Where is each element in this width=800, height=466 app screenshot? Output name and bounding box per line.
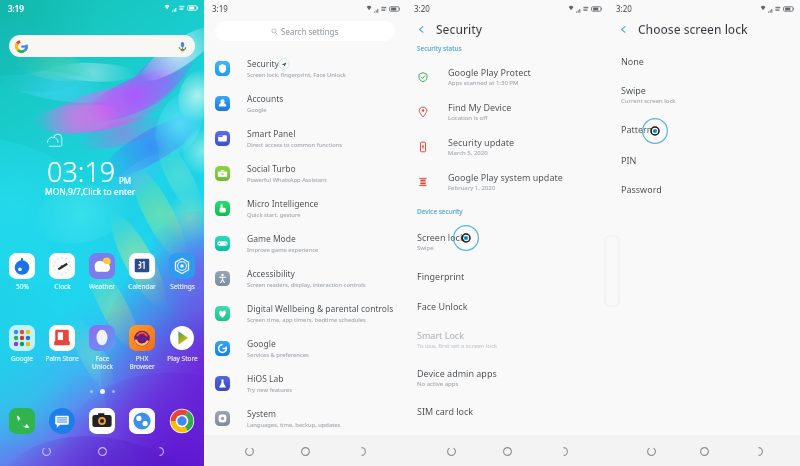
staticText: Device security (417, 207, 463, 216)
staticText: Pattern (621, 123, 653, 135)
staticText: 3:20 (616, 3, 632, 14)
button[interactable]: PIN (608, 145, 800, 174)
staticText: 3:19 (8, 3, 24, 14)
button[interactable]: Face Unlock (82, 325, 122, 371)
button[interactable]: Palm Store (42, 325, 82, 363)
button[interactable]: Back (552, 440, 574, 462)
button[interactable]: Swipe (608, 76, 800, 113)
staticText: Weather (89, 282, 115, 291)
button[interactable]: Messages (49, 408, 75, 434)
button[interactable]: Face Unlock (406, 291, 608, 321)
button[interactable]: Device admin apps (406, 358, 608, 396)
button[interactable]: Smart Lock (406, 321, 608, 358)
button[interactable]: Recents (35, 440, 57, 462)
button[interactable]: Screen lock (406, 222, 608, 261)
button[interactable]: Home (496, 440, 518, 462)
button[interactable]: Digital Wellbeing & parental controls (204, 296, 406, 331)
button[interactable]: Back (415, 23, 428, 36)
button[interactable]: Recents (440, 440, 462, 462)
button[interactable]: Back (617, 23, 630, 36)
staticText: Device admin apps (417, 367, 497, 379)
staticText: Play Store (167, 354, 198, 363)
button[interactable]: Back (148, 440, 170, 462)
staticText: Choose screen lock (638, 21, 748, 37)
staticText: MON,9/7,Click to enter (45, 186, 136, 198)
button[interactable]: HiOS Lab (204, 366, 406, 401)
staticText: Google (247, 338, 276, 350)
button[interactable]: Music (129, 408, 155, 434)
staticText: Accessibility (247, 268, 295, 280)
staticText: Quick start, gesture (247, 211, 301, 219)
button[interactable]: Game Mode (204, 226, 406, 261)
button[interactable]: Smart Panel (204, 121, 406, 156)
button[interactable]: Home (294, 440, 316, 462)
staticText: Google (247, 106, 267, 114)
staticText: Swipe (417, 244, 434, 252)
staticText: Face Unlock (417, 300, 468, 312)
button[interactable]: Security (204, 51, 406, 86)
staticText: Clock (54, 282, 71, 291)
staticText: March 5, 2020 (448, 149, 488, 157)
button[interactable]: None (608, 46, 800, 76)
staticText: System (247, 408, 276, 420)
button[interactable]: Weather (82, 253, 122, 291)
button[interactable]: Find My Device (406, 94, 608, 129)
staticText: PM (119, 175, 132, 186)
staticText: Social Turbo (247, 163, 296, 175)
staticText: Google Play system update (448, 171, 563, 183)
button[interactable]: Micro Intelligence (204, 191, 406, 226)
button[interactable]: PHX Browser (122, 325, 162, 371)
button[interactable]: Security update (406, 129, 608, 164)
staticText: Game Mode (247, 233, 296, 245)
button[interactable]: Google Play system update (406, 164, 608, 199)
button[interactable]: 50% (2, 253, 42, 291)
staticText: HiOS Lab (247, 373, 284, 385)
staticText: Direct access to common functions (247, 141, 343, 149)
staticText: February 1, 2020 (448, 184, 496, 192)
button[interactable]: Recents (238, 440, 260, 462)
staticText: 03:19 (47, 153, 116, 190)
staticText: Find My Device (448, 101, 512, 113)
button[interactable]: System (204, 401, 406, 436)
staticText: Search settings (281, 26, 339, 37)
button[interactable]: Recents (640, 440, 662, 462)
staticText: 3:20 (414, 3, 430, 14)
button[interactable]: Search settings (215, 21, 395, 41)
staticText: Current screen lock (621, 97, 676, 105)
button[interactable]: Camera (89, 408, 115, 434)
button[interactable]: Chrome (169, 408, 195, 434)
button[interactable]: Social Turbo (204, 156, 406, 191)
button[interactable]: SIM card lock (406, 396, 608, 425)
button[interactable]: Play Store (162, 325, 202, 363)
button[interactable]: Accounts (204, 86, 406, 121)
button[interactable]: Clock (42, 253, 82, 291)
button[interactable]: Home (91, 440, 113, 462)
button[interactable]: Password (608, 174, 800, 203)
button[interactable]: Encryption & credentials (406, 425, 608, 454)
staticText: None (621, 55, 644, 67)
button[interactable]: Fingerprint (406, 261, 608, 291)
staticText: PHX Browser (129, 354, 155, 371)
staticText: Swipe (621, 84, 646, 96)
button[interactable]: Google (204, 331, 406, 366)
button[interactable]: Home (693, 440, 715, 462)
staticText: Security (436, 21, 483, 37)
button[interactable]: Google (2, 325, 42, 363)
button[interactable]: Back (350, 440, 372, 462)
button[interactable]: Accessibility (204, 261, 406, 296)
button[interactable]: Search (9, 35, 195, 57)
staticText: Security update (448, 136, 515, 148)
staticText: SIM card lock (417, 405, 474, 417)
button[interactable]: Phone (9, 408, 35, 434)
button[interactable]: Back (747, 440, 769, 462)
staticText: Services & preferences (247, 351, 309, 359)
staticText: Calendar (128, 282, 156, 291)
button[interactable]: Pattern (608, 113, 800, 145)
staticText: Settings (170, 282, 195, 291)
button[interactable]: Google Play Protect (406, 59, 608, 94)
staticText: Accounts (247, 93, 284, 105)
staticText: Google Play Protect (448, 66, 531, 78)
button[interactable]: Calendar (122, 253, 162, 291)
button[interactable]: Settings (162, 253, 202, 291)
